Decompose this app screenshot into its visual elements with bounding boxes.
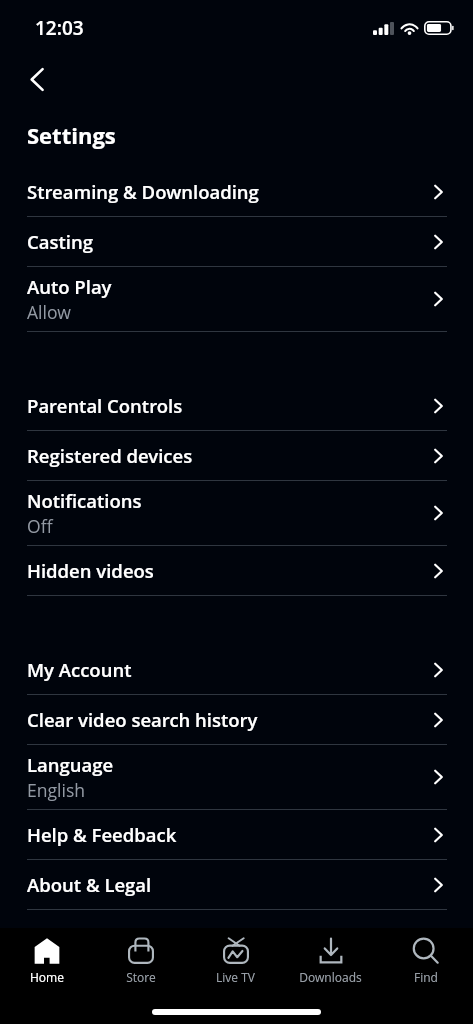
button[interactable]: Streaming & Downloading — [27, 167, 447, 216]
button[interactable]: Casting — [27, 217, 447, 266]
staticText: Parental Controls — [27, 393, 183, 418]
staticText: Off — [27, 514, 53, 538]
button[interactable]: Downloads — [283, 928, 378, 996]
button[interactable]: Find — [378, 928, 473, 996]
button[interactable]: Parental Controls — [27, 381, 447, 430]
staticText: Live TV — [216, 969, 255, 985]
staticText: Allow — [27, 300, 71, 324]
staticText: Find — [414, 969, 438, 985]
button[interactable]: Help & Feedback — [27, 810, 447, 859]
button[interactable]: Store — [94, 928, 188, 996]
staticText: Registered devices — [27, 443, 193, 468]
button[interactable]: Registered devices — [27, 431, 447, 480]
button[interactable]: Auto Play — [27, 267, 447, 331]
button[interactable]: About & Legal — [27, 860, 447, 909]
button[interactable]: Live TV — [188, 928, 283, 996]
button[interactable]: Language — [27, 745, 447, 809]
staticText: Language — [27, 752, 114, 777]
staticText: Casting — [27, 229, 93, 254]
staticText: Auto Play — [27, 274, 112, 299]
button[interactable]: My Account — [27, 645, 447, 694]
button[interactable]: Hidden videos — [27, 546, 447, 595]
button[interactable]: Home — [0, 928, 94, 996]
staticText: Help & Feedback — [27, 822, 177, 847]
staticText: Notifications — [27, 488, 142, 513]
button[interactable]: Clear video search history — [27, 695, 447, 744]
staticText: English — [27, 778, 86, 802]
staticText: Settings — [27, 120, 116, 150]
staticText: Hidden videos — [27, 558, 154, 583]
staticText: Store — [126, 969, 156, 985]
staticText: Clear video search history — [27, 707, 258, 732]
staticText: Downloads — [299, 969, 362, 985]
staticText: Streaming & Downloading — [27, 179, 259, 204]
staticText: My Account — [27, 657, 132, 682]
staticText: About & Legal — [27, 872, 152, 897]
staticText: Home — [30, 969, 64, 985]
button[interactable]: Notifications — [27, 481, 447, 545]
button[interactable]: Back — [13, 56, 61, 102]
staticText: 12:03 — [35, 15, 84, 41]
